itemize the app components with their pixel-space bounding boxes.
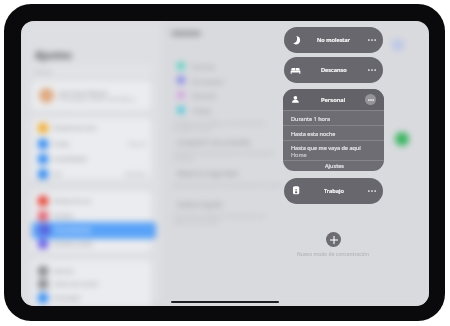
staticText: Ajustes (325, 162, 345, 170)
button[interactable]: Descanso (284, 57, 383, 83)
button[interactable]: Durante 1 hora (283, 111, 384, 125)
staticText: Nuevo modo de concentración (297, 251, 369, 258)
button[interactable]: Personal (283, 89, 384, 110)
button[interactable]: Hasta que me vaya de aquí (283, 141, 384, 160)
staticText: Hasta esta noche (291, 130, 336, 137)
staticText: No molestar (317, 36, 351, 44)
button[interactable]: Más opciones (365, 94, 376, 105)
staticText: Trabajo (324, 187, 344, 195)
staticText: Hasta que me vaya de aquí (291, 144, 361, 151)
staticText: Concentración (54, 226, 92, 233)
button[interactable]: Nuevo modo de concentración (326, 232, 341, 247)
button[interactable]: No molestar (284, 27, 383, 53)
staticText: ID de Apple, iCloud, contenido y… (59, 96, 138, 103)
staticText: Accesibilidad (53, 155, 87, 162)
staticText: Home (291, 151, 307, 158)
staticText: Sonidos (53, 212, 74, 219)
staticText: Personal (321, 96, 346, 104)
staticText: Juan García Raquel (59, 89, 108, 96)
staticText: Durante 1 hora (291, 115, 331, 122)
button[interactable]: Trabajo (284, 178, 383, 204)
staticText: Descanso (321, 66, 347, 74)
button[interactable]: Hasta esta noche (283, 126, 384, 140)
staticText: Pantalla y brillo (53, 240, 93, 247)
button[interactable]: Ajustes (283, 161, 384, 171)
staticText: Ajustes (35, 48, 72, 62)
